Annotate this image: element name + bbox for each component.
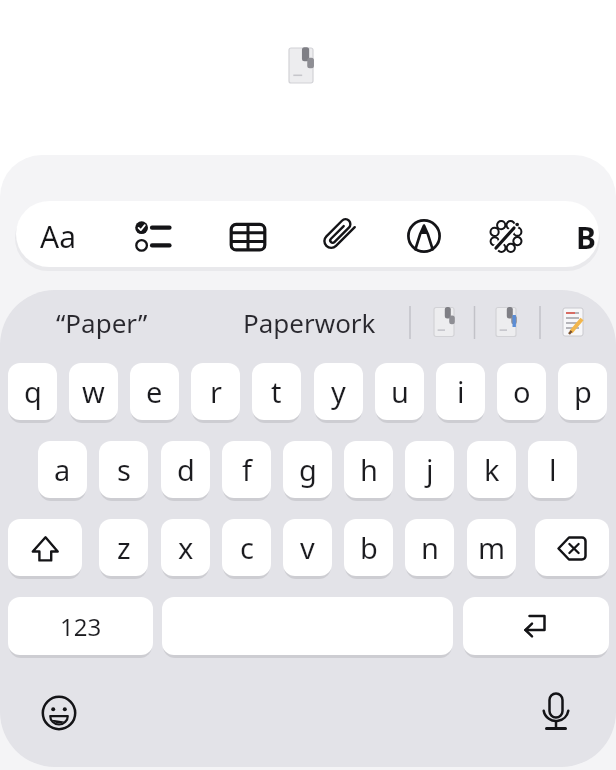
button[interactable] [535, 519, 609, 576]
staticText: B [576, 217, 596, 258]
staticText: p [574, 372, 592, 411]
staticText: e [146, 372, 163, 411]
button[interactable]: u [375, 363, 424, 420]
button[interactable]: n [405, 519, 454, 576]
staticText: w [82, 372, 105, 411]
button[interactable]: “Paper” [22, 292, 182, 352]
button[interactable] [310, 210, 362, 262]
button[interactable] [36, 690, 82, 736]
button[interactable]: r [191, 363, 240, 420]
staticText: l [549, 450, 557, 489]
staticText: q [24, 372, 42, 411]
staticText: g [299, 450, 317, 489]
staticText: d [177, 450, 195, 489]
staticText: k [484, 450, 500, 489]
staticText: z [117, 528, 131, 567]
staticText: u [391, 372, 409, 411]
button[interactable]: x [161, 519, 210, 576]
button[interactable]: 123 [8, 597, 153, 655]
staticText: a [54, 450, 71, 489]
button[interactable] [481, 210, 533, 262]
button[interactable]: k [467, 441, 516, 498]
button[interactable] [122, 210, 174, 262]
button[interactable]: m [467, 519, 516, 576]
button[interactable]: l [528, 441, 577, 498]
button[interactable] [222, 211, 274, 263]
button[interactable]: B [506, 207, 616, 267]
button[interactable]: s [99, 441, 148, 498]
button[interactable]: j [405, 441, 454, 498]
staticText: b [360, 528, 378, 567]
staticText: n [421, 528, 439, 567]
button[interactable]: z [99, 519, 148, 576]
staticText: c [240, 528, 254, 567]
staticText: Aa [40, 216, 76, 257]
staticText: o [513, 372, 531, 411]
staticText: j [426, 450, 434, 489]
button[interactable]: Aa [0, 206, 138, 266]
staticText: 123 [60, 610, 102, 643]
button[interactable]: p [558, 363, 607, 420]
button[interactable]: i [436, 363, 485, 420]
button[interactable]: c [222, 519, 271, 576]
button[interactable]: q [8, 363, 57, 420]
button[interactable] [8, 519, 82, 576]
button[interactable]: o [497, 363, 546, 420]
staticText: Paperwork [243, 305, 376, 340]
button[interactable]: e [130, 363, 179, 420]
staticText: v [300, 528, 315, 567]
button[interactable]: y [314, 363, 363, 420]
button[interactable] [398, 210, 450, 262]
button[interactable]: b [344, 519, 393, 576]
button[interactable]: v [283, 519, 332, 576]
button[interactable]: a [38, 441, 87, 498]
staticText: i [457, 372, 465, 411]
button[interactable]: f [222, 441, 271, 498]
button[interactable] [533, 688, 579, 734]
button[interactable]: g [283, 441, 332, 498]
button[interactable]: d [161, 441, 210, 498]
staticText: t [271, 372, 282, 411]
staticText: x [178, 528, 194, 567]
button[interactable]: h [344, 441, 393, 498]
button[interactable]: t [252, 363, 301, 420]
staticText: “Paper” [56, 305, 148, 340]
staticText: h [360, 450, 378, 489]
button[interactable]: Paperwork [229, 292, 389, 352]
staticText: s [117, 450, 131, 489]
staticText: r [210, 372, 222, 411]
staticText: f [242, 450, 252, 489]
button[interactable]: w [69, 363, 118, 420]
staticText: y [331, 372, 346, 411]
staticText: m [478, 528, 506, 567]
button[interactable] [463, 597, 609, 655]
